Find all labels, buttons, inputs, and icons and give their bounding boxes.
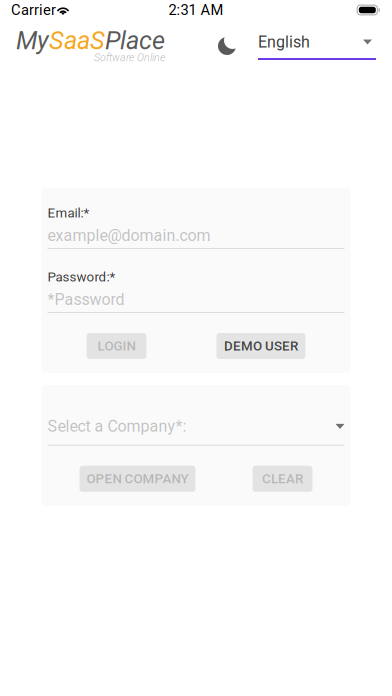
staticText: SaaS bbox=[49, 26, 105, 55]
staticText: OPEN COMPANY bbox=[86, 471, 188, 486]
staticText: Select a Company*: bbox=[47, 417, 186, 436]
staticText: Email:* bbox=[47, 205, 89, 221]
staticText: Password:* bbox=[47, 269, 115, 285]
staticText: My bbox=[16, 26, 49, 55]
button[interactable]: Toggle dark mode bbox=[215, 32, 243, 60]
staticText: LOGIN bbox=[97, 338, 135, 354]
staticText: 2:31 AM bbox=[168, 1, 223, 19]
button[interactable]: CLEAR bbox=[252, 466, 312, 492]
staticText: *Password bbox=[47, 290, 124, 309]
button[interactable]: DEMO USER bbox=[216, 333, 305, 359]
staticText: Carrier bbox=[11, 1, 56, 19]
button[interactable]: English bbox=[258, 32, 376, 60]
staticText: Place bbox=[105, 26, 165, 55]
button[interactable]: OPEN COMPANY bbox=[79, 466, 195, 492]
staticText: CLEAR bbox=[262, 471, 303, 486]
staticText: English bbox=[258, 33, 310, 51]
staticText: DEMO USER bbox=[224, 338, 298, 354]
button[interactable]: LOGIN bbox=[86, 333, 146, 359]
staticText: example@domain.com bbox=[47, 226, 210, 245]
staticText: Software Online bbox=[94, 51, 165, 64]
